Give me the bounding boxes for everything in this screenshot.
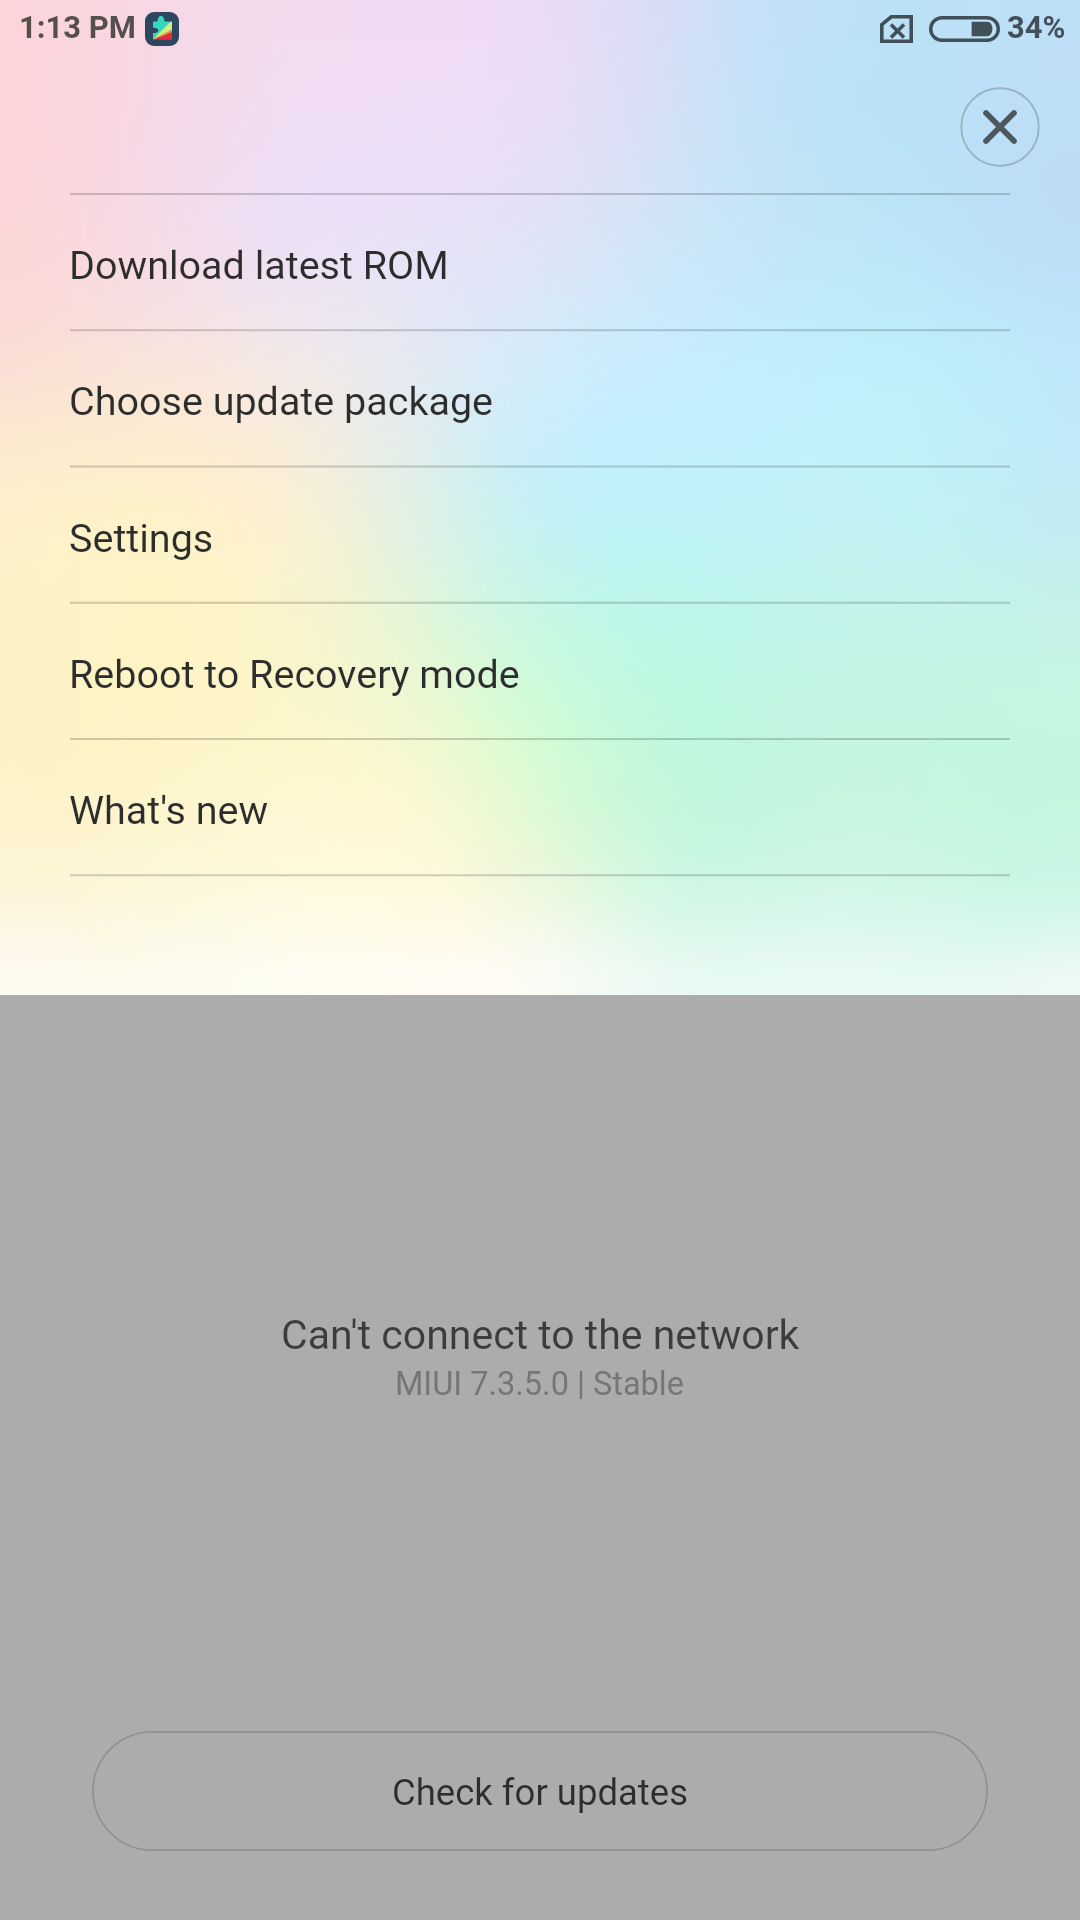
staticText: MIUI 7.3.5.0 | Stable (395, 1365, 685, 1403)
button[interactable]: What's new (0, 739, 1080, 875)
button[interactable]: Choose update package (0, 330, 1080, 466)
staticText: Can't connect to the network (281, 1311, 800, 1359)
staticText: Download latest ROM (69, 242, 449, 288)
button[interactable]: Settings (0, 467, 1080, 603)
staticText: Check for updates (392, 1771, 688, 1814)
staticText: Reboot to Recovery mode (69, 651, 520, 697)
button[interactable]: Check for updates (92, 1731, 988, 1851)
staticText: What's new (69, 787, 269, 833)
staticText: Settings (69, 515, 214, 561)
button[interactable]: Download latest ROM (0, 194, 1080, 330)
staticText: 1:13 PM (19, 9, 136, 45)
staticText: 34% (1007, 9, 1066, 45)
button[interactable]: Reboot to Recovery mode (0, 603, 1080, 739)
button[interactable]: Close (960, 87, 1040, 167)
staticText: Choose update package (69, 378, 494, 424)
